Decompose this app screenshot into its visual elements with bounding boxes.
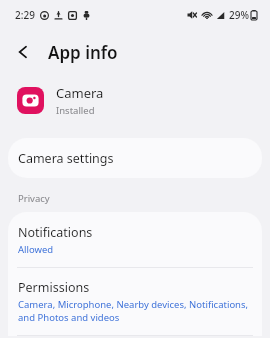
staticText: Privacy xyxy=(18,192,50,205)
button[interactable]: Camera settings xyxy=(8,138,262,178)
staticText: 2:29 xyxy=(15,8,35,22)
staticText: 29% xyxy=(229,8,249,22)
staticText: Camera settings xyxy=(18,150,114,167)
button[interactable]: Back xyxy=(6,35,40,69)
button[interactable]: Permissions xyxy=(8,268,262,335)
staticText: Permissions xyxy=(18,279,90,296)
button[interactable]: Camera xyxy=(0,74,270,126)
staticText: Installed xyxy=(56,104,95,117)
staticText: Notifications xyxy=(18,224,93,241)
staticText: Camera xyxy=(56,84,104,102)
button[interactable]: Notifications xyxy=(8,212,262,267)
staticText: App info xyxy=(48,41,118,64)
staticText: Allowed xyxy=(18,243,54,256)
staticText: Camera, Microphone, Nearby devices, Noti… xyxy=(18,298,250,324)
